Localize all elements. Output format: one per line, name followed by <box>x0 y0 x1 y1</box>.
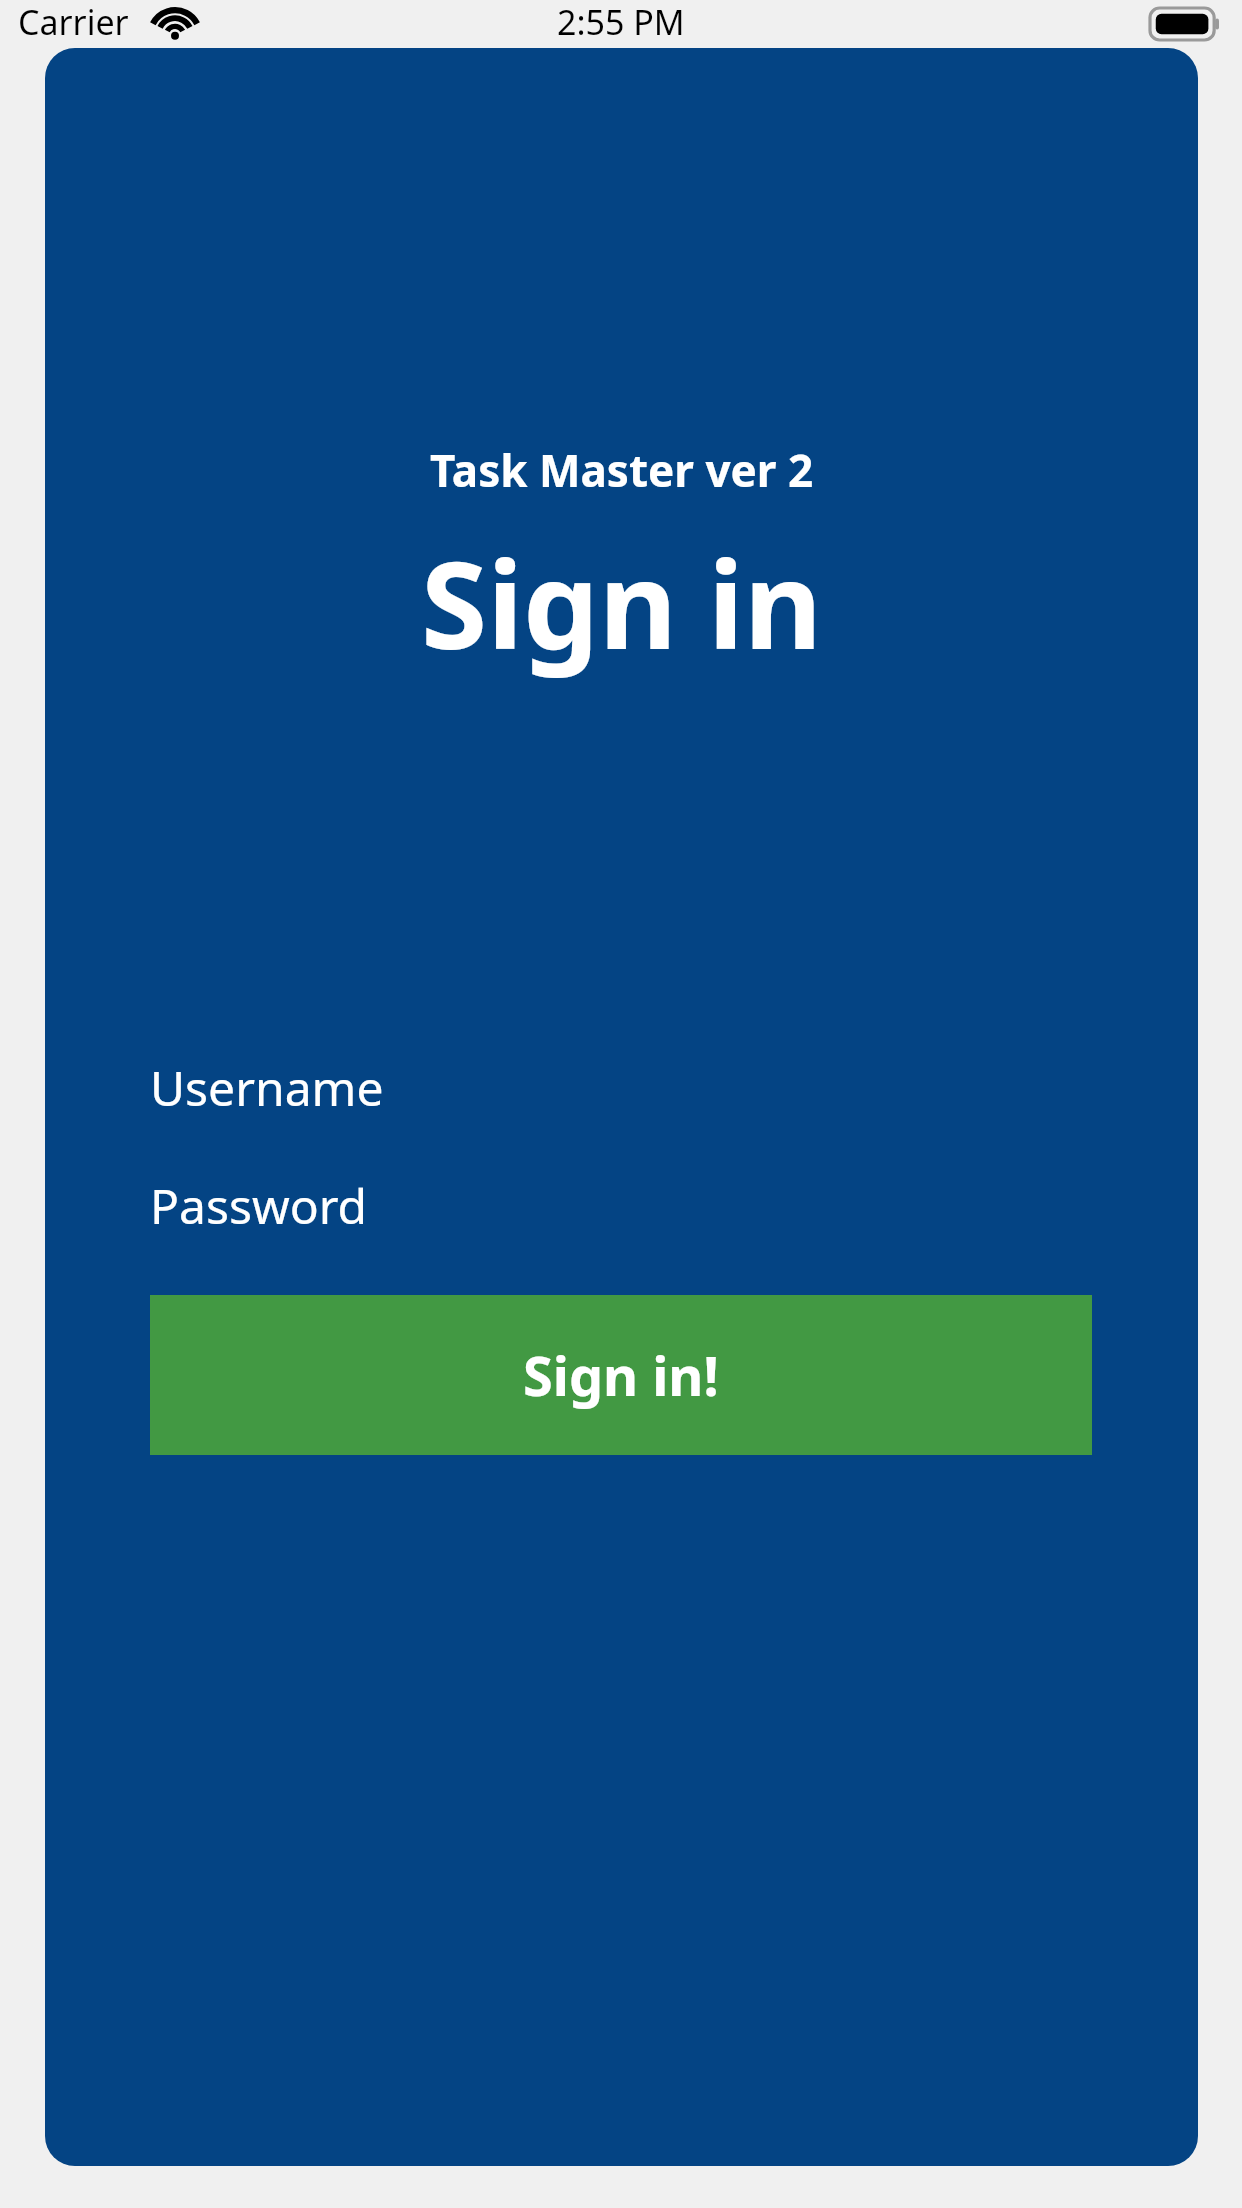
staticText: Password <box>150 1173 368 1238</box>
staticText: Sign in! <box>523 1338 719 1412</box>
staticText: Sign in <box>45 521 1198 684</box>
button[interactable]: Username <box>150 1048 1092 1126</box>
staticText: Carrier <box>18 0 129 45</box>
staticText: Task Master ver 2 <box>45 440 1198 500</box>
staticText: 2:55 PM <box>557 0 685 45</box>
button[interactable]: Password <box>150 1166 1092 1244</box>
button[interactable]: Sign in! <box>150 1295 1092 1455</box>
staticText: Username <box>150 1055 384 1120</box>
other: Wi-Fi signal <box>148 3 202 43</box>
other: Battery full <box>1150 8 1220 40</box>
